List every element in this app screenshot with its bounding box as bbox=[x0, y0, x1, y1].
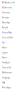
staticText: About bbox=[2, 46, 7, 49]
staticText: Logout bbox=[2, 51, 8, 54]
staticText: Privacy Policy bbox=[2, 31, 12, 34]
staticText: Notifications bbox=[2, 71, 12, 74]
staticText: Rate Us bbox=[2, 26, 8, 29]
staticText: Share App bbox=[2, 21, 10, 24]
staticText: Settings bbox=[2, 16, 9, 19]
staticText: Feedback bbox=[2, 61, 10, 64]
staticText: Contact Us bbox=[2, 66, 11, 69]
staticText: Language bbox=[2, 76, 10, 79]
staticText: More Apps bbox=[2, 86, 11, 89]
staticText: Help bbox=[2, 81, 5, 84]
staticText: Home bbox=[2, 56, 7, 59]
staticText: My Bookmarks bbox=[2, 1, 15, 4]
staticText: Favorites bbox=[2, 11, 10, 14]
staticText: Bookmarks bbox=[2, 6, 12, 9]
staticText: Exit bbox=[2, 41, 5, 44]
staticText: Terms of Use bbox=[2, 36, 13, 39]
